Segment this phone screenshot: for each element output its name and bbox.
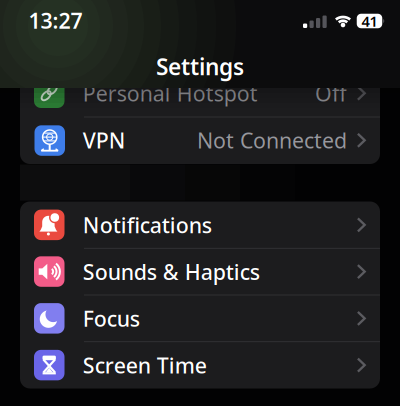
button[interactable]: Personal Hotspot	[0, 0, 400, 406]
button[interactable]: Screen Time	[0, 0, 400, 406]
staticText: Screen Time	[83, 351, 207, 379]
staticText: 41	[361, 11, 377, 31]
staticText: Personal Hotspot	[83, 79, 258, 107]
staticText: Sounds & Haptics	[83, 257, 260, 286]
button[interactable]: VPN	[0, 0, 400, 406]
staticText: Off	[315, 79, 347, 107]
button[interactable]: Focus	[0, 0, 400, 406]
staticText: Not Connected	[197, 126, 347, 154]
staticText: Settings	[156, 51, 244, 81]
staticText: VPN	[83, 126, 126, 154]
button[interactable]: Notifications	[0, 0, 400, 406]
staticText: Focus	[83, 304, 140, 332]
button[interactable]: Sounds & Haptics	[0, 0, 400, 406]
staticText: Notifications	[83, 211, 212, 239]
staticText: 13:27	[28, 6, 82, 35]
